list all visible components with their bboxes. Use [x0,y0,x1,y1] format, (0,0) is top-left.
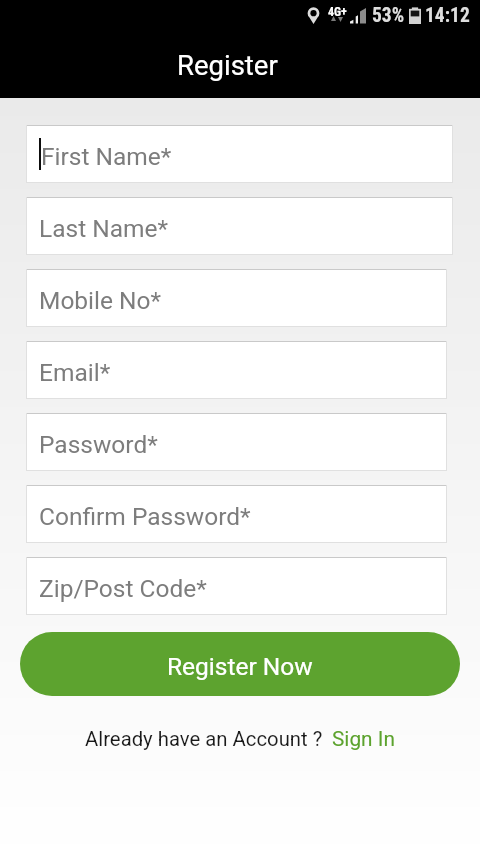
staticText: Already have an Account ? [85,727,323,751]
button[interactable]: Register Now [20,632,460,696]
other: Signal strength [349,6,367,24]
staticText: Register Now [167,652,313,681]
button[interactable]: First Name* [26,125,453,183]
staticText: Sign In [332,727,395,751]
staticText: Zip/Post Code* [39,574,207,603]
staticText: 4G+ [328,5,347,19]
staticText: 14:12 [425,4,470,27]
button[interactable]: Confirm Password* [26,485,447,543]
other: Battery [409,7,421,24]
button[interactable]: Password* [26,413,447,471]
staticText: Email* [39,358,111,387]
staticText: Register [177,49,278,81]
button[interactable]: Zip/Post Code* [26,557,447,615]
staticText: Last Name* [39,214,169,243]
button[interactable]: Email* [26,341,447,399]
button[interactable]: Sign In [332,727,395,751]
button[interactable]: Last Name* [26,197,453,255]
staticText: 53% [372,4,405,27]
button[interactable]: Mobile No* [26,269,447,327]
staticText: Mobile No* [39,286,162,315]
staticText: Confirm Password* [39,502,251,531]
staticText: First Name* [41,142,172,171]
staticText: Password* [39,430,158,459]
other: Location [307,7,320,24]
